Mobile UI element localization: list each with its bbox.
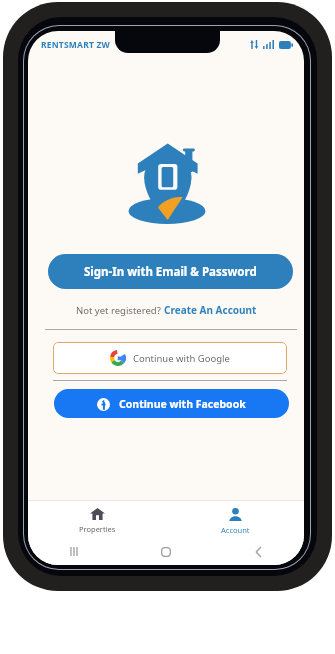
button[interactable]: Home bbox=[120, 547, 212, 557]
staticText: Continue with Google bbox=[133, 352, 230, 365]
button[interactable]: Continue with Facebook bbox=[54, 389, 289, 418]
other: Back bbox=[255, 547, 262, 557]
button[interactable]: Continue with Google bbox=[53, 342, 287, 374]
staticText: Continue with Facebook bbox=[119, 397, 246, 411]
button[interactable]: Create An Account bbox=[164, 303, 257, 317]
button[interactable]: Recent apps bbox=[28, 547, 120, 556]
staticText: Create An Account bbox=[164, 303, 257, 317]
staticText: Not yet registered? bbox=[76, 304, 164, 317]
other: Recent apps bbox=[70, 547, 78, 556]
other: Properties bbox=[90, 508, 105, 520]
button[interactable]: Properties bbox=[28, 501, 166, 534]
button[interactable]: Account bbox=[166, 501, 304, 535]
staticText: RENTSMART ZW bbox=[41, 39, 110, 51]
other: Account bbox=[229, 508, 242, 521]
staticText: Account bbox=[221, 525, 250, 535]
other: Home bbox=[161, 547, 171, 557]
button[interactable]: Back bbox=[212, 547, 304, 557]
staticText: Sign-In with Email & Password bbox=[84, 264, 257, 280]
staticText: Properties bbox=[79, 524, 116, 534]
button[interactable]: Sign-In with Email & Password bbox=[48, 254, 293, 289]
